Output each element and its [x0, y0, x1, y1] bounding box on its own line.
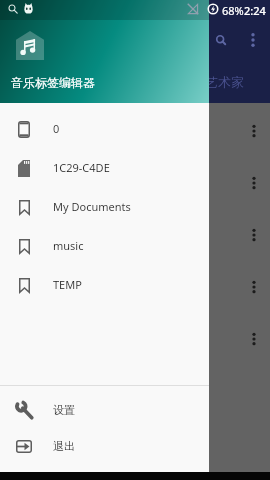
button[interactable]: Item options [244, 173, 264, 193]
staticText: 1C29-C4DE [53, 160, 110, 175]
button[interactable]: Item options [244, 277, 264, 297]
button[interactable]: Item options [244, 329, 264, 349]
button[interactable]: 0 [0, 109, 209, 148]
staticText: 0 [53, 121, 60, 136]
staticText: 68% [222, 3, 244, 18]
staticText: 音乐标签编辑器 [11, 75, 95, 90]
button[interactable]: Item options [244, 225, 264, 245]
button[interactable]: My Documents [0, 187, 209, 226]
staticText: 2:24 [244, 3, 266, 18]
button[interactable]: Item options [244, 121, 264, 141]
button[interactable]: 退出 [0, 428, 209, 464]
staticText: My Documents [53, 199, 131, 214]
button[interactable]: music [0, 226, 209, 265]
staticText: music [53, 238, 84, 253]
button[interactable]: TEMP [0, 265, 209, 304]
button[interactable]: More options [243, 30, 263, 50]
button[interactable]: 设置 [0, 392, 209, 428]
staticText: TEMP [53, 277, 82, 292]
staticText: 退出 [53, 439, 75, 453]
button[interactable]: 1C29-C4DE [0, 148, 209, 187]
staticText: 艺术家 [205, 74, 244, 90]
button[interactable]: Search [206, 25, 236, 55]
staticText: 设置 [53, 403, 75, 417]
